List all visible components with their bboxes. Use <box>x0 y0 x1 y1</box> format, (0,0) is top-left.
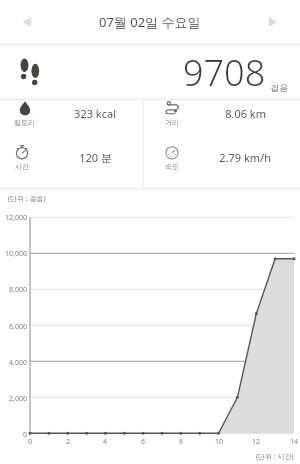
button[interactable]: 9708 <box>0 45 300 99</box>
staticText: 2,000 <box>0 394 27 404</box>
staticText: 2 <box>60 437 76 447</box>
button[interactable]: Previous day <box>10 5 44 39</box>
staticText: 8 <box>173 437 189 447</box>
staticText: 8.06 km <box>225 106 266 121</box>
staticText: 4 <box>97 437 113 447</box>
staticText: 07월 02일 수요일 <box>99 13 201 31</box>
staticText: 10 <box>211 437 227 447</box>
staticText: 12,000 <box>0 213 27 223</box>
staticText: 2.79 km/h <box>219 150 271 165</box>
staticText: 8,000 <box>0 285 27 295</box>
staticText: 10,000 <box>0 249 27 259</box>
staticText: 6 <box>135 437 151 447</box>
staticText: 14 <box>286 437 300 447</box>
button[interactable]: Next day <box>256 5 290 39</box>
staticText: 칼로리 <box>14 118 35 127</box>
staticText: (단위 : 시간) <box>256 452 294 462</box>
staticText: 6,000 <box>0 322 27 332</box>
button[interactable]: 속도 <box>150 144 300 171</box>
staticText: 거리 <box>165 118 179 127</box>
staticText: 9708 <box>183 48 266 97</box>
button[interactable]: 거리 <box>150 100 300 127</box>
staticText: 속도 <box>165 162 179 171</box>
staticText: 12 <box>248 437 264 447</box>
button[interactable]: 칼로리 <box>0 100 150 127</box>
staticText: 0 <box>0 430 27 440</box>
staticText: 4,000 <box>0 358 27 368</box>
staticText: 0 <box>22 437 38 447</box>
staticText: 걸음 <box>270 82 288 93</box>
staticText: (단위 : 걸음) <box>8 194 46 204</box>
staticText: 323 kcal <box>74 106 116 121</box>
button[interactable]: 시간 <box>0 144 150 171</box>
staticText: 120 분 <box>79 150 112 165</box>
staticText: 시간 <box>15 162 29 171</box>
